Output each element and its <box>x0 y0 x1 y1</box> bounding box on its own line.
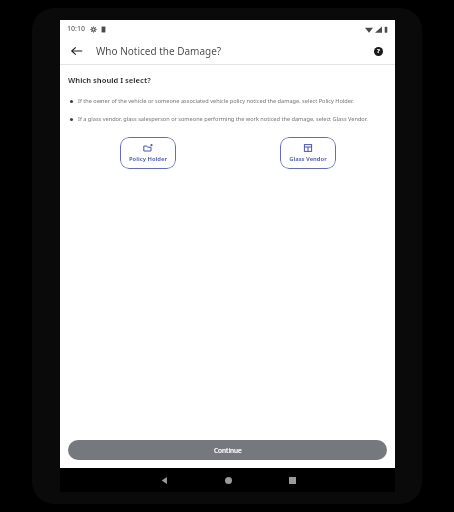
staticText: 10:10 <box>67 24 85 34</box>
button[interactable]: Help <box>368 41 388 61</box>
staticText: Policy Holder <box>129 155 167 163</box>
button[interactable]: Policy Holder <box>120 137 176 169</box>
staticText: If a glass vendor, glass salesperson or … <box>78 115 368 123</box>
button[interactable]: Home <box>214 468 242 492</box>
button[interactable]: Back <box>66 40 88 62</box>
staticText: Which should I select? <box>68 75 151 85</box>
button[interactable]: Continue <box>68 440 387 460</box>
staticText: Who Noticed the Damage? <box>96 44 222 58</box>
button[interactable]: Recent apps <box>278 468 306 492</box>
staticText: Continue <box>214 446 242 455</box>
staticText: Glass Vendor <box>289 155 327 163</box>
staticText: ? <box>377 47 380 55</box>
staticText: If the owner of the vehicle or someone a… <box>78 97 354 105</box>
button[interactable]: Back <box>150 468 178 492</box>
button[interactable]: Glass Vendor <box>280 137 336 169</box>
